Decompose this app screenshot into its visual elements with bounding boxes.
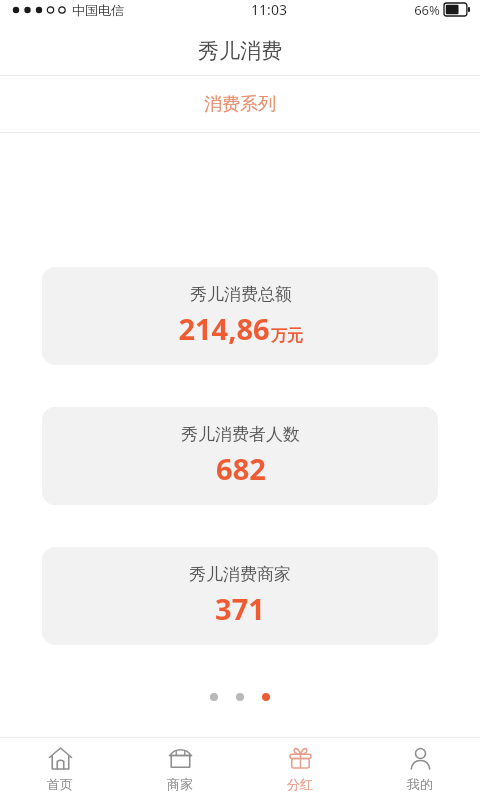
button[interactable]: 秀儿消费总额 — [42, 267, 438, 365]
button[interactable]: 秀儿消费者人数 — [42, 407, 438, 505]
staticText: 分红 — [287, 776, 313, 792]
button[interactable]: 首页 — [0, 738, 120, 800]
button[interactable]: 消费系列 — [0, 76, 480, 132]
staticText: 秀儿消费商家 — [189, 564, 291, 585]
button[interactable]: 分红 — [240, 738, 360, 800]
staticText: 商家 — [167, 776, 193, 792]
button[interactable]: 秀儿消费商家 — [42, 547, 438, 645]
staticText: 中国电信 — [72, 2, 124, 18]
staticText: 371 — [215, 589, 265, 628]
staticText: 66% — [414, 1, 440, 19]
staticText: 我的 — [407, 776, 433, 792]
staticText: 消费系列 — [204, 93, 276, 116]
staticText: 秀儿消费 — [198, 38, 282, 64]
staticText: 11:03 — [251, 0, 287, 19]
staticText: 秀儿消费者人数 — [181, 424, 300, 445]
button[interactable]: 我的 — [360, 738, 480, 800]
staticText: 秀儿消费总额 — [190, 284, 292, 305]
staticText: 万元 — [271, 326, 303, 346]
button[interactable]: 商家 — [120, 738, 240, 800]
staticText: 682 — [216, 449, 266, 488]
staticText: 首页 — [47, 776, 73, 792]
staticText: 214,86 — [178, 309, 270, 348]
